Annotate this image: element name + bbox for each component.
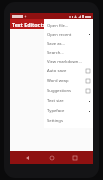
staticText: Auto save [47,68,86,74]
button[interactable]: Text Editor.txt [12,21,48,28]
staticText: Text size [47,98,89,104]
staticText: Text Editor.txt [12,21,48,28]
button[interactable]: Recent apps [69,152,81,164]
button[interactable]: Suggestions [44,86,93,96]
button[interactable]: Settings [44,116,93,126]
staticText: Suggestions [47,88,86,94]
staticText: Typeface [47,108,89,114]
button[interactable]: Open recent [44,30,93,39]
staticText: Word wrap [47,78,86,84]
staticText: View markdown... [47,59,90,65]
button[interactable]: Word wrap [44,76,93,86]
button[interactable]: Home [46,152,58,164]
button[interactable]: Save as... [44,39,93,48]
button[interactable]: Back [22,152,34,164]
staticText: Save as... [47,41,90,47]
button[interactable]: Open file... [44,21,93,30]
button[interactable]: Text size [44,96,93,106]
staticText: Search... [47,50,90,56]
staticText: Settings [47,118,90,124]
button[interactable]: Search... [44,48,93,57]
button[interactable]: View markdown... [44,57,93,66]
button[interactable]: Auto save [44,66,93,76]
staticText: Open recent [47,32,89,38]
button[interactable]: Typeface [44,106,93,116]
staticText: Open file... [47,23,90,29]
